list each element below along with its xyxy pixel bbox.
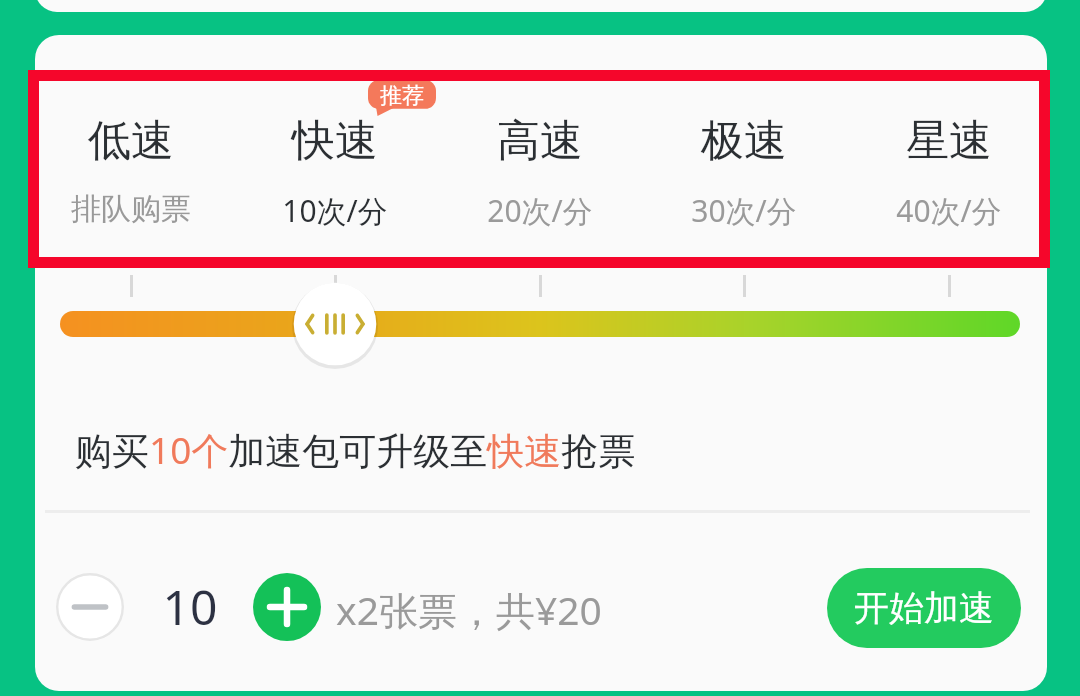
- staticText: 快速: [235, 114, 435, 172]
- button[interactable]: 星速: [849, 96, 1049, 256]
- staticText: 开始加速: [854, 586, 994, 630]
- staticText: 排队购票: [31, 190, 231, 234]
- staticText: 10: [130, 574, 250, 640]
- staticText: 极速: [644, 114, 844, 172]
- button[interactable]: Adjust speed: [292, 281, 378, 367]
- staticText: x2张票，共¥20: [336, 583, 756, 637]
- staticText: 高速: [440, 114, 640, 172]
- staticText: 购买10个加速包可升级至快速抢票: [75, 424, 875, 476]
- staticText: 10次/分: [235, 190, 435, 234]
- staticText: 星速: [849, 114, 1049, 172]
- staticText: 20次/分: [440, 190, 640, 234]
- staticText: 低速: [31, 114, 231, 172]
- button[interactable]: 开始加速: [827, 568, 1021, 648]
- button[interactable]: Increase: [253, 573, 321, 641]
- button[interactable]: 高速: [440, 96, 640, 256]
- staticText: 推荐: [368, 82, 436, 108]
- button[interactable]: 低速: [31, 96, 231, 256]
- button[interactable]: 极速: [644, 96, 844, 256]
- staticText: 40次/分: [849, 190, 1049, 234]
- button[interactable]: Decrease: [56, 573, 124, 641]
- button[interactable]: 快速: [235, 96, 435, 256]
- staticText: 30次/分: [644, 190, 844, 234]
